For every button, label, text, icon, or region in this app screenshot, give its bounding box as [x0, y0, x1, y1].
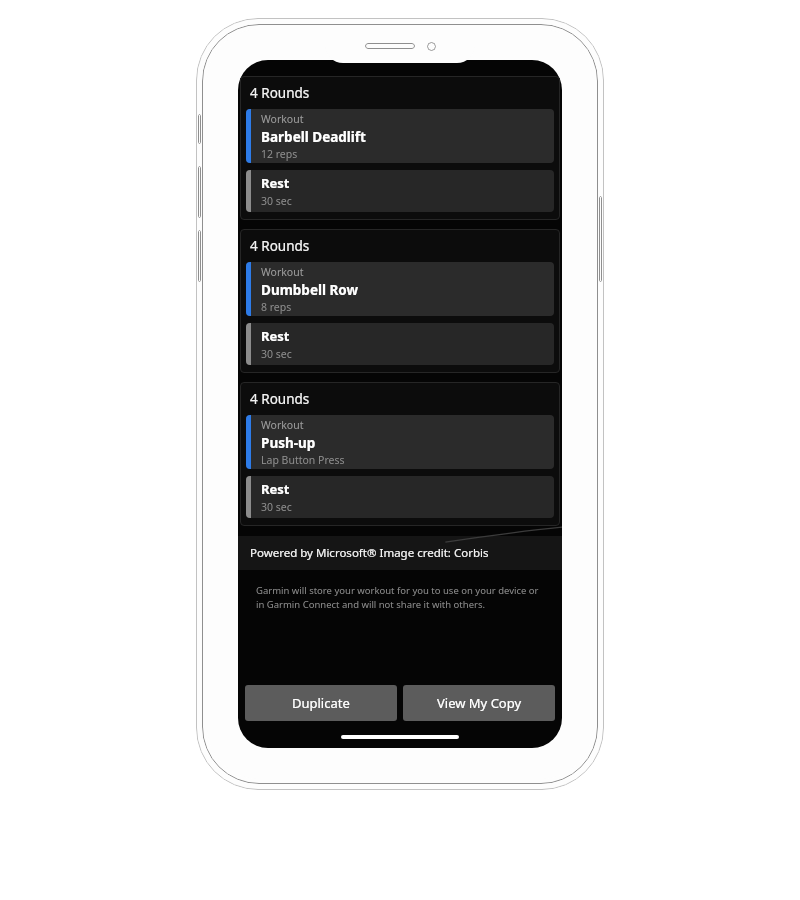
staticText: 30 sec — [261, 194, 292, 208]
staticText: Rest — [261, 174, 290, 192]
staticText: Workout — [261, 112, 304, 126]
other: Home indicator — [341, 735, 459, 739]
staticText: Workout — [261, 418, 304, 432]
staticText: Garmin will store your workout for you t… — [256, 584, 544, 611]
button[interactable]: Rest — [246, 170, 554, 212]
staticText: 8 reps — [261, 300, 292, 314]
button[interactable]: Rest — [246, 476, 554, 518]
staticText: 30 sec — [261, 500, 292, 514]
staticText: Rest — [261, 327, 290, 345]
staticText: Duplicate — [292, 694, 350, 712]
button[interactable]: Duplicate — [245, 685, 397, 721]
button[interactable]: Workout — [246, 415, 554, 469]
staticText: Rest — [261, 480, 290, 498]
staticText: 4 Rounds — [250, 237, 310, 255]
staticText: Dumbbell Row — [261, 281, 359, 299]
staticText: Lap Button Press — [261, 453, 345, 467]
staticText: Powered by Microsoft® Image credit: Corb… — [250, 545, 489, 561]
button[interactable]: Workout — [246, 262, 554, 316]
button[interactable]: 4 Rounds — [240, 229, 560, 373]
button[interactable]: Workout — [246, 109, 554, 163]
staticText: Workout — [261, 265, 304, 279]
staticText: 4 Rounds — [250, 84, 310, 102]
staticText: 4 Rounds — [250, 390, 310, 408]
staticText: 30 sec — [261, 347, 292, 361]
button[interactable]: View My Copy — [403, 685, 555, 721]
staticText: 12 reps — [261, 147, 298, 161]
staticText: Push-up — [261, 434, 316, 452]
button[interactable]: 4 Rounds — [240, 76, 560, 220]
button[interactable]: 4 Rounds — [240, 382, 560, 526]
staticText: Barbell Deadlift — [261, 128, 366, 146]
staticText: View My Copy — [437, 694, 522, 712]
button[interactable]: Rest — [246, 323, 554, 365]
